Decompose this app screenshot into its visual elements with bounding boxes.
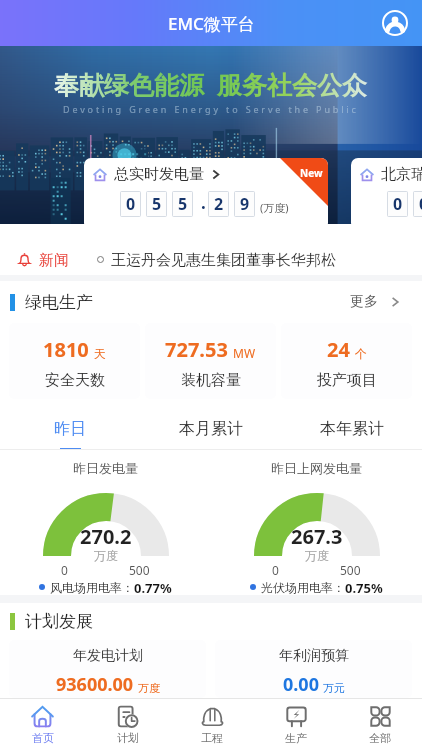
staticText: 昨日 (54, 419, 86, 439)
staticText: 装机容量 (181, 371, 241, 390)
staticText: 昨日上网发电量 (271, 460, 362, 476)
staticText: 投产项目 (317, 371, 377, 390)
button[interactable]: 新闻 (0, 224, 422, 275)
staticText: 年利润预算 (279, 647, 349, 665)
button[interactable]: 全部 (338, 699, 422, 750)
staticText: 王运丹会见惠生集团董事长华邦松 (111, 251, 336, 270)
staticText: 267.3 (291, 523, 343, 550)
staticText: 0.75% (345, 579, 383, 595)
staticText: 5 (178, 193, 188, 215)
button[interactable]: 计划 (85, 699, 170, 750)
staticText: 9 (240, 193, 250, 215)
staticText: 昨日发电量 (73, 460, 138, 476)
button[interactable]: 总实时发电量 (84, 158, 328, 230)
staticText: 本月累计 (179, 419, 243, 439)
staticText: 绿电生产 (25, 292, 93, 313)
staticText: New (300, 166, 323, 180)
button[interactable]: 24 (281, 323, 412, 399)
staticText: 奉献绿色能源 服务社会公众 (54, 67, 368, 101)
staticText: Devoting Green Energy to Serve the Publi… (63, 103, 359, 115)
staticText: 工程 (201, 731, 223, 745)
staticText: MW (233, 345, 256, 361)
staticText: 光伏场用电率： (261, 580, 345, 595)
button[interactable]: 年利润预算 (215, 640, 412, 698)
staticText: 生产 (285, 731, 307, 745)
staticText: 风电场用电率： (50, 580, 134, 595)
staticText: 万度 (138, 681, 160, 695)
staticText: 0 (126, 193, 136, 215)
button[interactable]: 更多 (342, 281, 422, 323)
staticText: 新闻 (39, 251, 69, 270)
staticText: 93600.00 (56, 672, 134, 697)
staticText: 500 (340, 562, 361, 578)
staticText: 2 (214, 193, 224, 215)
staticText: (万度) (260, 200, 289, 215)
staticText: 0 (419, 193, 422, 215)
staticText: 万度 (94, 548, 118, 563)
staticText: 727.53 (165, 336, 228, 363)
staticText: 全部 (369, 731, 391, 745)
staticText: 个 (355, 346, 367, 361)
button[interactable]: 727.53 (145, 323, 276, 399)
staticText: 总实时发电量 (114, 165, 204, 184)
button[interactable]: Account (379, 7, 411, 39)
button[interactable]: 首页 (0, 699, 85, 750)
staticText: 北京瑞泰发电量 (381, 165, 422, 184)
staticText: 0.00 (283, 672, 319, 697)
staticText: 年发电计划 (73, 647, 143, 665)
staticText: 0 (393, 193, 403, 215)
button[interactable]: 生产 (254, 699, 338, 750)
button[interactable]: 1810 (9, 323, 140, 399)
staticText: 270.2 (80, 523, 132, 550)
staticText: 首页 (32, 731, 54, 745)
button[interactable]: 昨日 (0, 412, 140, 450)
staticText: 万元 (323, 681, 345, 695)
staticText: 计划发展 (25, 611, 93, 632)
staticText: EMC微平台 (168, 12, 255, 35)
staticText: 万度 (305, 548, 329, 563)
button[interactable]: 工程 (170, 699, 254, 750)
button[interactable]: 北京瑞泰发电量 (351, 158, 422, 230)
staticText: . (201, 191, 206, 214)
staticText: 0 (272, 562, 279, 578)
staticText: 500 (129, 562, 150, 578)
staticText: 5 (152, 193, 162, 215)
staticText: 计划 (117, 731, 139, 745)
staticText: 更多 (350, 293, 378, 311)
button[interactable]: 本年累计 (281, 412, 422, 450)
staticText: 0.77% (134, 579, 172, 595)
button[interactable]: 年发电计划 (9, 640, 206, 698)
staticText: 安全天数 (45, 371, 105, 390)
staticText: 0 (61, 562, 68, 578)
staticText: 天 (94, 346, 106, 361)
staticText: 1810 (43, 336, 89, 363)
button[interactable]: 本月累计 (140, 412, 281, 450)
staticText: 本年累计 (320, 419, 384, 439)
staticText: 24 (327, 336, 350, 363)
